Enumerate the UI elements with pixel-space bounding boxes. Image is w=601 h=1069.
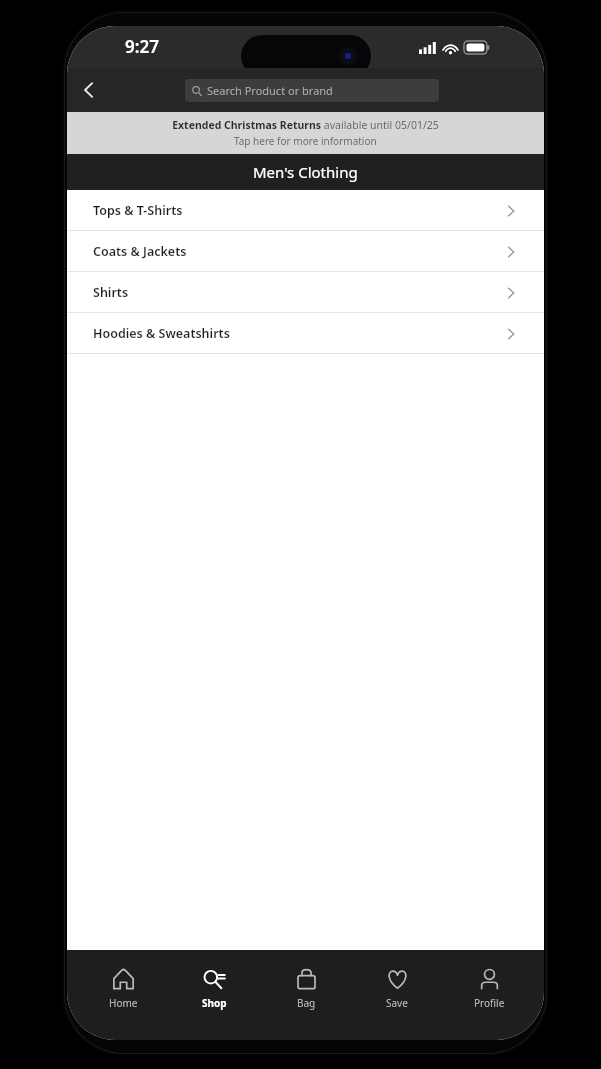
staticText: Hoodies & Sweatshirts [93, 325, 230, 342]
button[interactable]: Back [67, 68, 111, 112]
staticText: Home [109, 996, 138, 1010]
staticText: Bag [297, 996, 316, 1010]
button[interactable]: Shop [178, 968, 250, 1010]
button[interactable]: Hoodies & Sweatshirts [67, 313, 544, 354]
staticText: Extended Christmas Returns available unt… [172, 118, 439, 132]
staticText: Tops & T-Shirts [93, 202, 183, 219]
staticText: Men's Clothing [253, 162, 358, 182]
staticText: Shirts [93, 284, 129, 301]
staticText: Search Product or brand [207, 83, 333, 98]
button[interactable]: Coats & Jackets [67, 231, 544, 272]
button[interactable]: Home [87, 968, 159, 1010]
staticText: Save [386, 996, 408, 1010]
staticText: Coats & Jackets [93, 243, 187, 260]
staticText: Shop [202, 996, 227, 1010]
button[interactable]: Tops & T-Shirts [67, 190, 544, 231]
button[interactable]: Shirts [67, 272, 544, 313]
button[interactable]: Bag [270, 968, 342, 1010]
button[interactable]: Extended Christmas Returns available unt… [67, 112, 544, 154]
button[interactable]: Save [361, 968, 433, 1010]
staticText: Profile [474, 996, 505, 1010]
staticText: 9:27 [125, 35, 159, 58]
button[interactable]: Search Product or brand [185, 79, 439, 102]
button[interactable]: Profile [453, 968, 525, 1010]
staticText: Tap here for more information [234, 134, 377, 148]
